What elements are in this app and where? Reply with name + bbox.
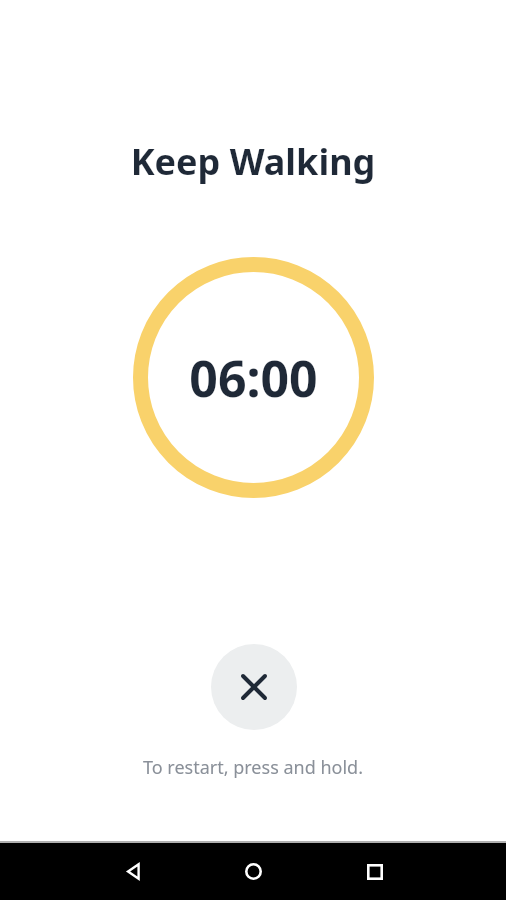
staticText: 06:00 (189, 344, 318, 412)
button[interactable]: Back (113, 843, 153, 900)
button[interactable]: Recents (355, 843, 395, 900)
button[interactable]: Home (233, 843, 273, 900)
staticText: To restart, press and hold. (0, 755, 506, 780)
staticText: Keep Walking (0, 137, 506, 186)
button[interactable]: Stop (211, 644, 297, 730)
